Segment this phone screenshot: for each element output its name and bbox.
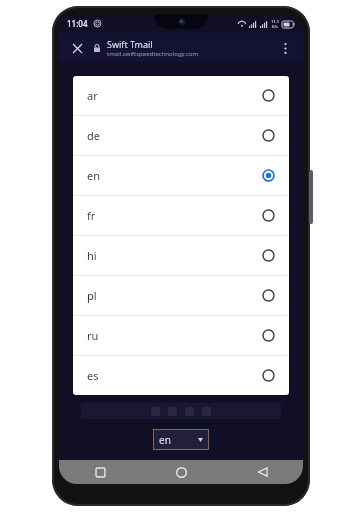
staticText: ru <box>87 328 99 343</box>
button[interactable]: More options <box>275 38 295 58</box>
staticText: hi <box>87 248 97 263</box>
staticText: tmail.swiftspeedtechnology.com <box>107 50 199 58</box>
button[interactable]: en <box>73 156 289 195</box>
button[interactable]: Home <box>141 460 222 484</box>
button[interactable]: Close <box>67 38 87 58</box>
button[interactable]: pl <box>73 276 289 315</box>
button[interactable]: ru <box>73 316 289 355</box>
button[interactable]: hi <box>73 236 289 275</box>
staticText: 11:04 <box>67 18 88 29</box>
staticText: pl <box>87 288 97 303</box>
staticText: K/s <box>272 24 278 29</box>
button[interactable]: es <box>73 356 289 395</box>
staticText: es <box>87 368 99 383</box>
button[interactable]: ar <box>73 76 289 115</box>
button[interactable]: fr <box>73 196 289 235</box>
staticText: fr <box>87 208 96 223</box>
staticText: 11.1 <box>271 19 279 24</box>
button[interactable]: de <box>73 116 289 155</box>
staticText: ar <box>87 88 98 103</box>
button[interactable]: en <box>153 429 209 450</box>
button[interactable]: Back <box>222 460 303 484</box>
staticText: Swift Tmail <box>107 38 153 50</box>
staticText: en <box>87 168 101 183</box>
staticText: de <box>87 128 100 143</box>
staticText: en <box>159 433 171 447</box>
button[interactable]: Recent apps <box>59 460 141 484</box>
